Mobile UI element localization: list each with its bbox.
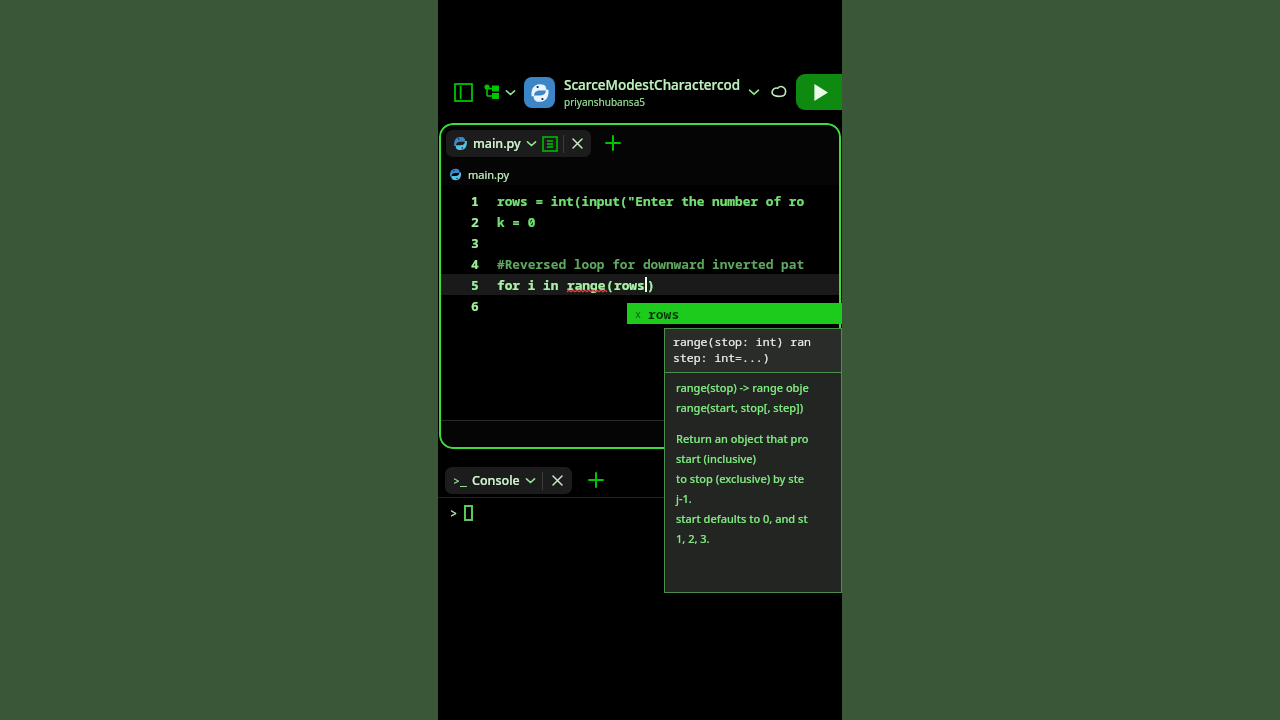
staticText: for i in — [497, 276, 567, 293]
staticText: ( — [606, 276, 614, 293]
staticText: k = 0 — [497, 213, 536, 230]
staticText: ) — [647, 276, 655, 293]
staticText: > — [450, 505, 458, 521]
staticText: step: int=...) — [673, 350, 770, 366]
staticText: Return an object that pro — [676, 431, 809, 451]
staticText: main.py — [473, 135, 521, 152]
button[interactable]: Toggle sidebar — [448, 77, 478, 107]
button[interactable]: main.py — [446, 130, 591, 157]
staticText: rows — [648, 305, 680, 323]
button[interactable]: Expand — [742, 80, 766, 104]
staticText: #Reversed loop for downward inverted pat — [497, 255, 805, 272]
button[interactable]: Close tab — [571, 137, 584, 150]
staticText: >_ — [453, 473, 467, 489]
staticText: 2 — [471, 213, 479, 231]
staticText: 6 — [471, 297, 479, 315]
button[interactable]: >_ — [445, 467, 572, 494]
button[interactable]: Branch — [484, 84, 515, 101]
staticText: ScarceModestCharactercode — [564, 76, 742, 94]
button[interactable]: Cloud sync — [766, 79, 792, 105]
staticText: 1, 2, 3. — [676, 531, 710, 551]
staticText: main.py — [468, 167, 510, 182]
staticText: range(start, stop[, step]) — [676, 400, 806, 420]
staticText: 3 — [471, 234, 479, 252]
staticText: range(stop: int) ran — [673, 334, 811, 350]
staticText: 5 — [471, 276, 479, 294]
button[interactable]: New tab — [602, 132, 624, 154]
staticText: to stop (exclusive) by ste — [676, 471, 805, 491]
staticText: rows — [614, 276, 645, 293]
staticText: Console — [472, 472, 520, 489]
staticText: j-1. — [676, 491, 692, 511]
staticText: x — [635, 307, 641, 321]
staticText: start (inclusive) — [676, 451, 757, 471]
staticText: rows = int(input("Enter the number of ro — [497, 192, 805, 209]
staticText: 1 — [471, 192, 479, 210]
button[interactable]: x — [627, 303, 842, 324]
button[interactable]: Close console — [551, 474, 564, 487]
staticText: range — [567, 276, 606, 293]
button[interactable]: New console — [585, 469, 607, 491]
button[interactable]: Python project — [524, 77, 555, 108]
staticText: range(stop) -> range obje — [676, 380, 809, 400]
staticText: start defaults to 0, and st — [676, 511, 808, 531]
staticText: priyanshubansa5 — [564, 95, 645, 109]
staticText: 4 — [471, 255, 479, 273]
button[interactable]: Run — [796, 74, 842, 110]
